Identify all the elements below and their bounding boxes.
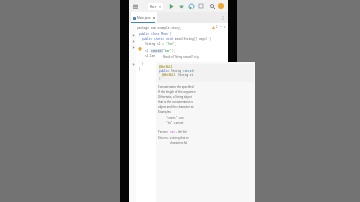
button[interactable]: Account: [218, 3, 224, 9]
staticText: "cares".con: [166, 116, 184, 120]
staticText: String: [171, 69, 183, 73]
staticText: Main.java: [137, 16, 151, 20]
staticText: that is the concatenation o: [158, 100, 194, 104]
staticText: String s1 =: [145, 42, 166, 46]
staticText: "bar": [163, 49, 172, 53]
staticText: str: [170, 130, 175, 134]
staticText: public: [159, 69, 171, 73]
staticText: Params:: [158, 130, 170, 134]
button[interactable]: Main.java: [131, 12, 157, 23]
button[interactable]: Run: [167, 2, 175, 10]
staticText: public class Main {: [139, 32, 172, 36]
staticText: @NotNull: [162, 73, 178, 77]
staticText: concat(: [183, 69, 195, 73]
button[interactable]: Search: [208, 2, 216, 10]
staticText: If the length of the argumen: [158, 90, 196, 94]
staticText: package com.example.story;: [137, 26, 182, 30]
staticText: public static void: [142, 37, 175, 41]
staticText: Main: [150, 5, 157, 9]
staticText: a string that re: [170, 136, 189, 140]
staticText: concat(: [151, 49, 163, 53]
staticText: }: [142, 62, 144, 66]
staticText: 2: [216, 25, 218, 29]
staticText: ^: [220, 25, 222, 29]
button[interactable]: Run with coverage: [187, 2, 195, 10]
staticText: String st: [178, 73, 194, 77]
staticText: object and the character se: [158, 105, 194, 109]
staticText: v: [224, 25, 226, 29]
staticText: Otherwise, a String object: [158, 95, 192, 99]
staticText: s1.len: [145, 54, 156, 58]
button[interactable]: More options: [219, 14, 227, 22]
button[interactable]: Debug: [177, 2, 185, 10]
staticText: main(String[] args) {: [175, 37, 211, 41]
staticText: Returns:: [158, 136, 170, 140]
staticText: "to".concat: [166, 121, 184, 125]
staticText: ;: [175, 42, 177, 46]
button[interactable]: Main: [148, 3, 163, 10]
staticText: }: [139, 67, 141, 71]
staticText: @NotNull: [159, 65, 173, 69]
staticText: characters fol: [170, 141, 188, 145]
staticText: );: [172, 49, 176, 53]
staticText: "foo": [166, 42, 175, 46]
button[interactable]: Project: [131, 2, 139, 10]
staticText: – the Stri: [175, 130, 187, 134]
staticText: Result of 'String.concat()' is ig: [163, 55, 199, 59]
staticText: Examples:: [158, 110, 172, 114]
button[interactable]: Show intention actions: [137, 46, 142, 51]
staticText: Concatenates the specified: [158, 85, 194, 89]
button[interactable]: Stop: [197, 2, 205, 10]
staticText: s1.: [145, 49, 151, 53]
staticText: ): [159, 77, 161, 81]
